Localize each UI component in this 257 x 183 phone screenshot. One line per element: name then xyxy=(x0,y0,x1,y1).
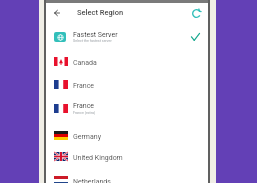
staticText: Germany xyxy=(73,133,101,141)
button[interactable]: Back xyxy=(48,4,65,21)
staticText: France xyxy=(73,102,95,110)
staticText: France (extra) xyxy=(73,111,96,115)
button[interactable]: France xyxy=(46,73,208,95)
staticText: Netherlands xyxy=(73,178,111,183)
button[interactable]: Netherlands xyxy=(46,169,208,183)
button[interactable]: Select Region xyxy=(77,8,124,17)
button[interactable]: France xyxy=(46,95,208,122)
staticText: France xyxy=(73,82,95,90)
button[interactable]: United Kingdom xyxy=(46,145,208,167)
staticText: United Kingdom xyxy=(73,154,123,162)
button[interactable]: Germany xyxy=(46,124,208,146)
button[interactable]: Refresh xyxy=(188,5,204,21)
staticText: Select the fastest server xyxy=(73,39,112,43)
staticText: Canada xyxy=(73,59,97,67)
button[interactable]: Fastest Server xyxy=(46,24,208,50)
staticText: Fastest Server xyxy=(73,31,118,39)
other: Selected xyxy=(191,33,200,41)
button[interactable]: Canada xyxy=(46,50,208,72)
